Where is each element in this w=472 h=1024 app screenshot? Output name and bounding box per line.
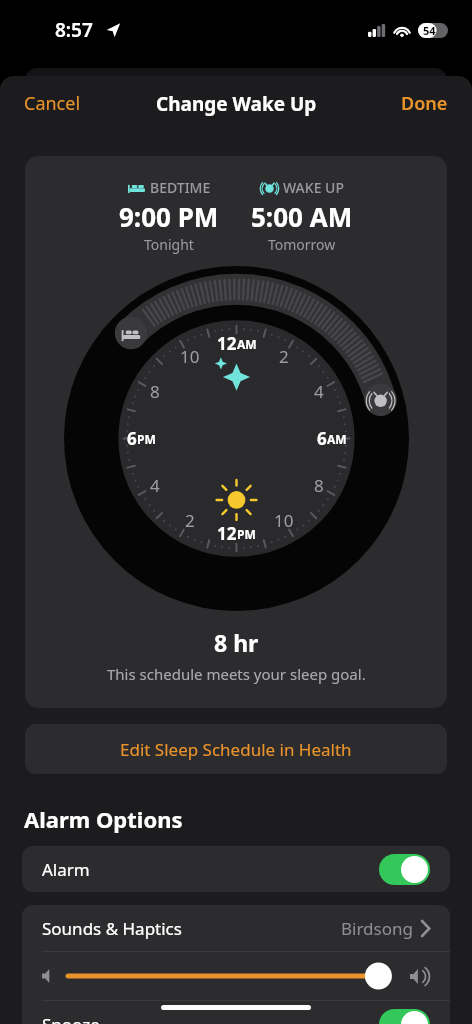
staticText: Cancel: [24, 91, 81, 116]
button[interactable]: Alarm: [22, 846, 450, 892]
staticText: 8:57: [55, 17, 93, 43]
staticText: WAKE UP: [283, 178, 344, 197]
staticText: 4: [150, 474, 160, 497]
staticText: PM: [237, 526, 256, 542]
staticText: 12: [217, 332, 237, 355]
staticText: Birdsong: [341, 917, 413, 940]
staticText: 54: [423, 23, 436, 38]
staticText: BEDTIME: [150, 178, 211, 197]
staticText: Tonight: [144, 235, 194, 254]
button[interactable]: [22, 952, 450, 1000]
button[interactable]: Toggle on: [379, 854, 430, 885]
staticText: 10: [180, 345, 200, 368]
button[interactable]: Done: [377, 81, 472, 126]
staticText: 10: [274, 509, 294, 532]
staticText: 9:00 PM: [119, 199, 219, 234]
staticText: 6: [127, 427, 137, 450]
staticText: PM: [137, 431, 156, 447]
staticText: Alarm: [42, 858, 90, 881]
staticText: AM: [327, 431, 347, 447]
staticText: 8 hr: [214, 627, 259, 658]
staticText: 8: [314, 474, 324, 497]
staticText: Done: [401, 91, 448, 116]
staticText: 4: [314, 380, 324, 403]
staticText: 2: [279, 345, 289, 368]
button[interactable]: Sleep schedule dial: [64, 266, 409, 611]
staticText: Change Wake Up: [156, 91, 317, 117]
staticText: 8: [150, 380, 160, 403]
button[interactable]: Toggle on: [379, 1009, 430, 1024]
staticText: 12: [217, 522, 237, 545]
button[interactable]: Cancel: [0, 81, 105, 126]
staticText: 6: [317, 427, 327, 450]
staticText: AM: [237, 336, 257, 352]
button[interactable]: Sounds & Haptics: [22, 905, 450, 951]
staticText: Tomorrow: [268, 235, 336, 254]
button[interactable]: Snooze: [22, 1001, 450, 1024]
staticText: Sounds & Haptics: [42, 917, 182, 940]
staticText: 5:00 AM: [251, 199, 353, 234]
staticText: Snooze: [42, 1013, 100, 1024]
staticText: Edit Sleep Schedule in Health: [120, 738, 352, 761]
staticText: Alarm Options: [24, 804, 183, 834]
button[interactable]: Edit Sleep Schedule in Health: [25, 724, 447, 774]
staticText: This schedule meets your sleep goal.: [107, 664, 366, 684]
staticText: 2: [185, 509, 195, 532]
